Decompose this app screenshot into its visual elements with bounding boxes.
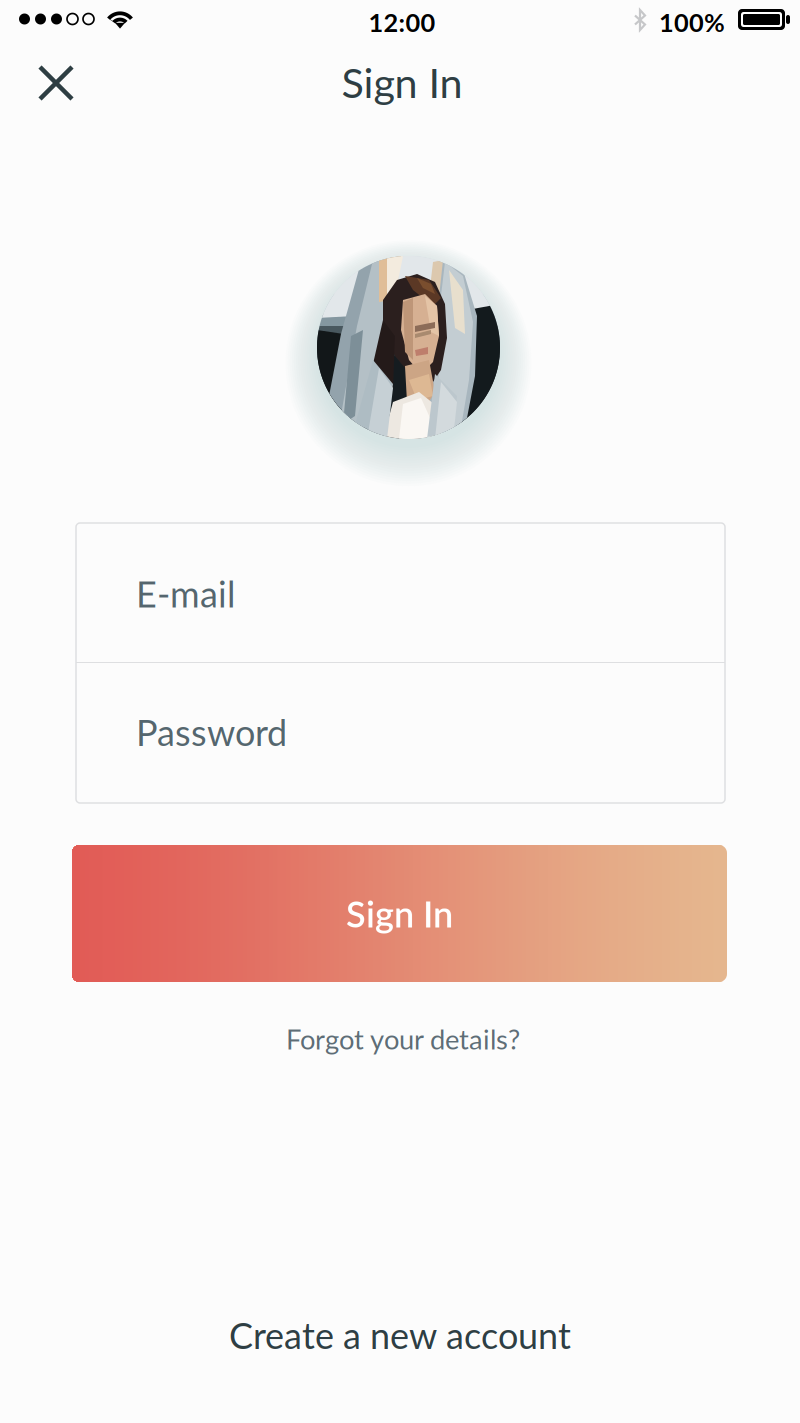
button[interactable]: Forgot your details? xyxy=(203,1011,603,1067)
staticText: 100% xyxy=(659,7,725,37)
staticText: Forgot your details? xyxy=(286,1023,520,1055)
button[interactable]: Sign In xyxy=(72,845,727,982)
staticText: E-mail xyxy=(136,572,235,615)
staticText: 12:00 xyxy=(368,7,435,37)
staticText: Sign In xyxy=(341,57,462,107)
button[interactable]: Create a new account xyxy=(150,1302,650,1368)
staticText: Password xyxy=(136,710,287,754)
staticText: Sign In xyxy=(346,892,453,935)
staticText: Create a new account xyxy=(229,1313,571,1357)
button[interactable]: Close xyxy=(18,48,94,118)
